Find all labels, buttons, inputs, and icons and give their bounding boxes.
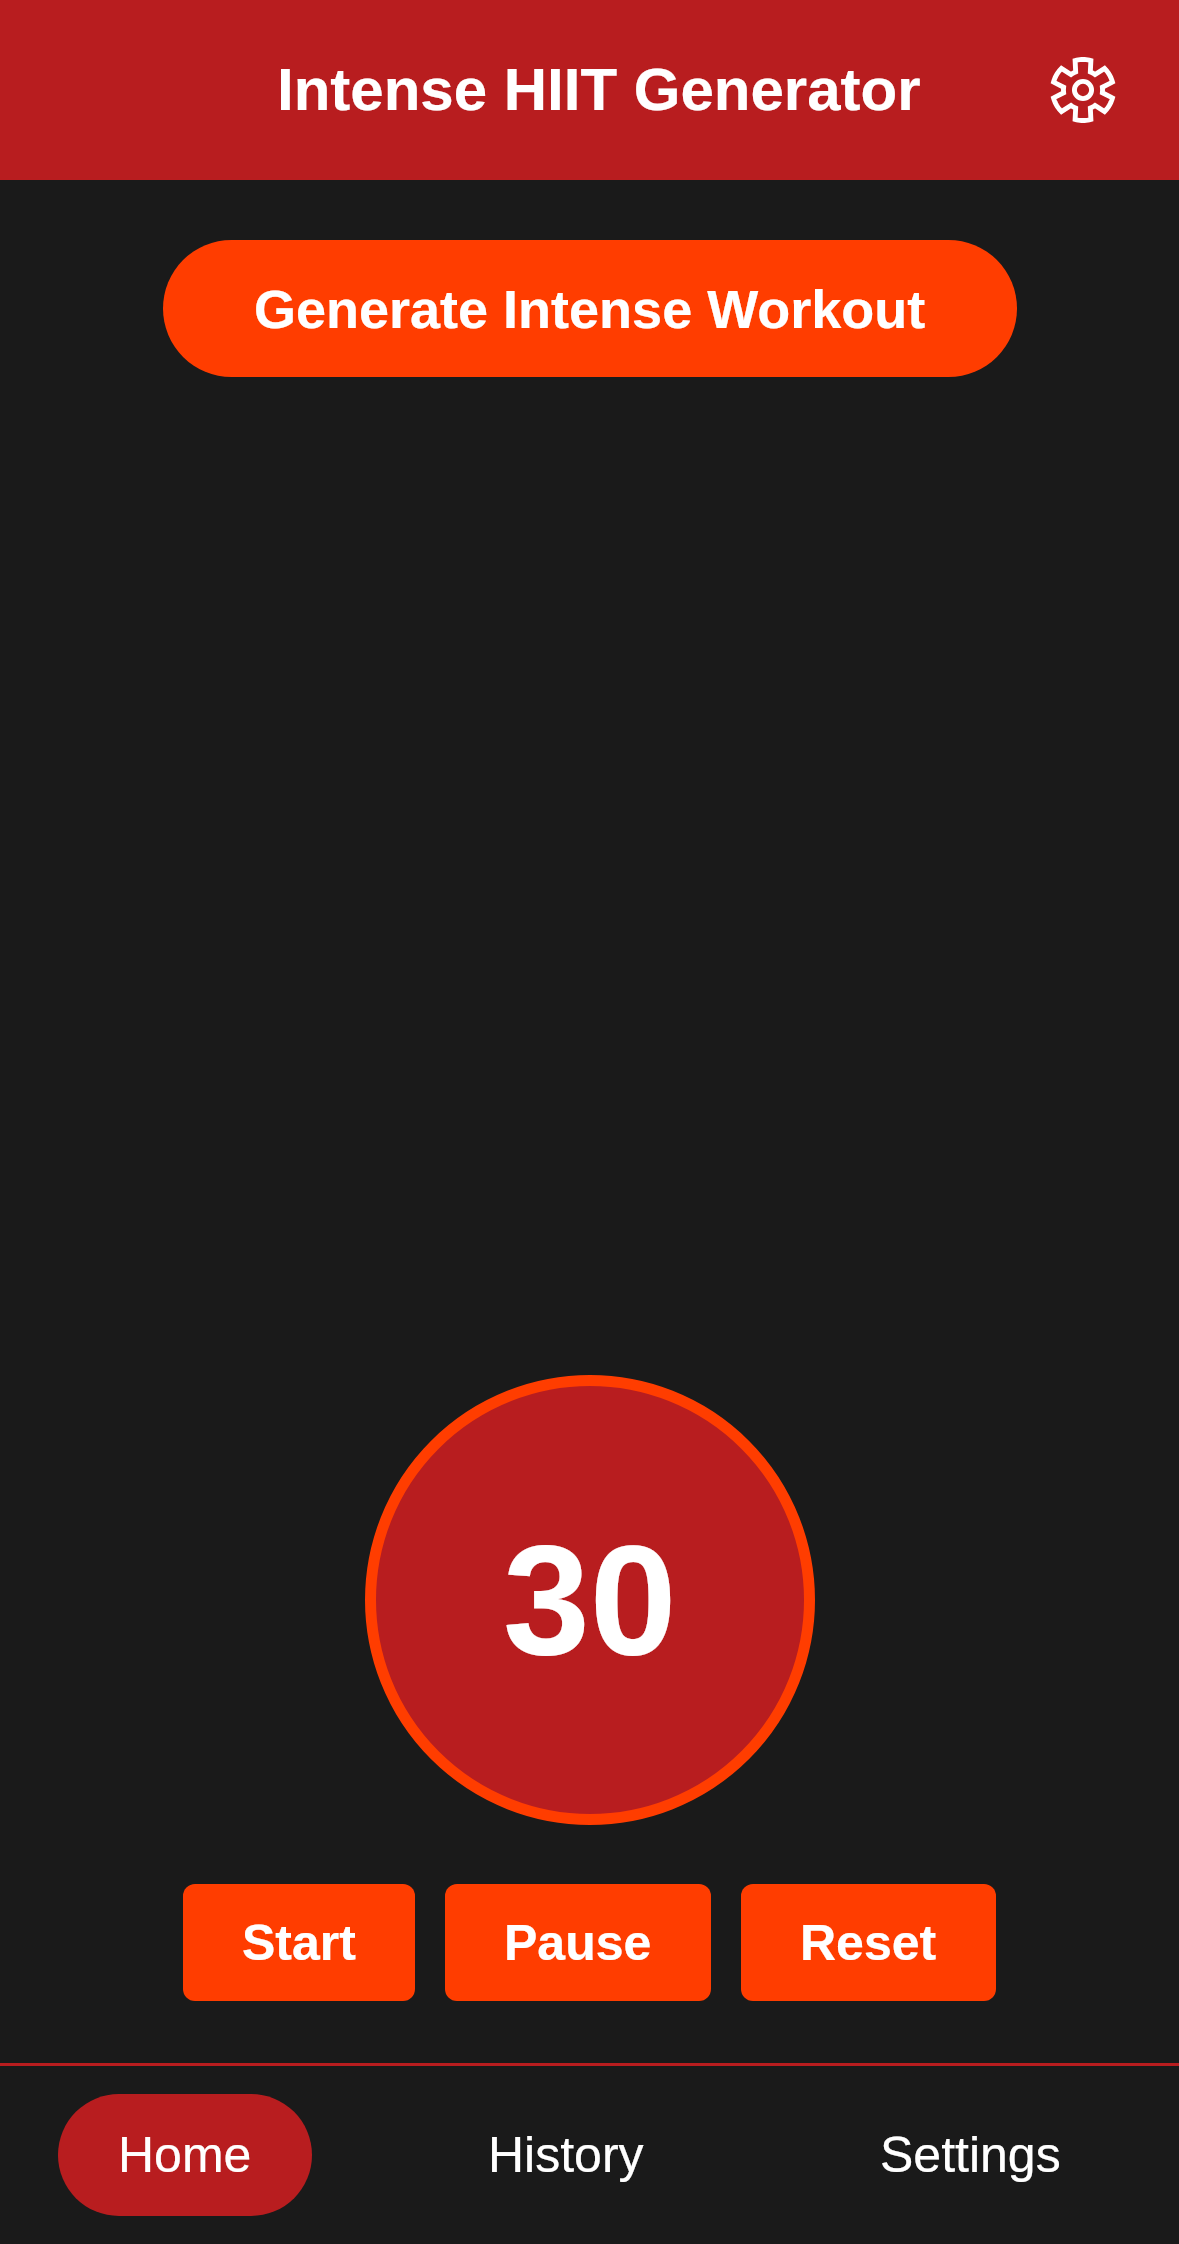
staticText: Start (242, 1915, 356, 1971)
staticText: Settings (880, 2127, 1061, 2183)
staticText: Home (118, 2127, 252, 2183)
button[interactable]: Home (58, 2094, 312, 2216)
button[interactable]: Generate Intense Workout (163, 240, 1017, 377)
staticText: Pause (504, 1915, 652, 1971)
staticText: Reset (800, 1915, 937, 1971)
staticText: Intense HIIT Generator (277, 56, 921, 123)
button[interactable]: Pause (445, 1884, 711, 2001)
staticText: Generate Intense Workout (254, 279, 926, 339)
staticText: 30 (503, 1513, 677, 1687)
button[interactable]: Settings (1050, 57, 1116, 123)
staticText: History (488, 2127, 644, 2183)
button[interactable]: History (428, 2094, 704, 2216)
button[interactable]: Settings (820, 2094, 1121, 2216)
button[interactable]: Reset (741, 1884, 996, 2001)
button[interactable]: Start (183, 1884, 415, 2001)
